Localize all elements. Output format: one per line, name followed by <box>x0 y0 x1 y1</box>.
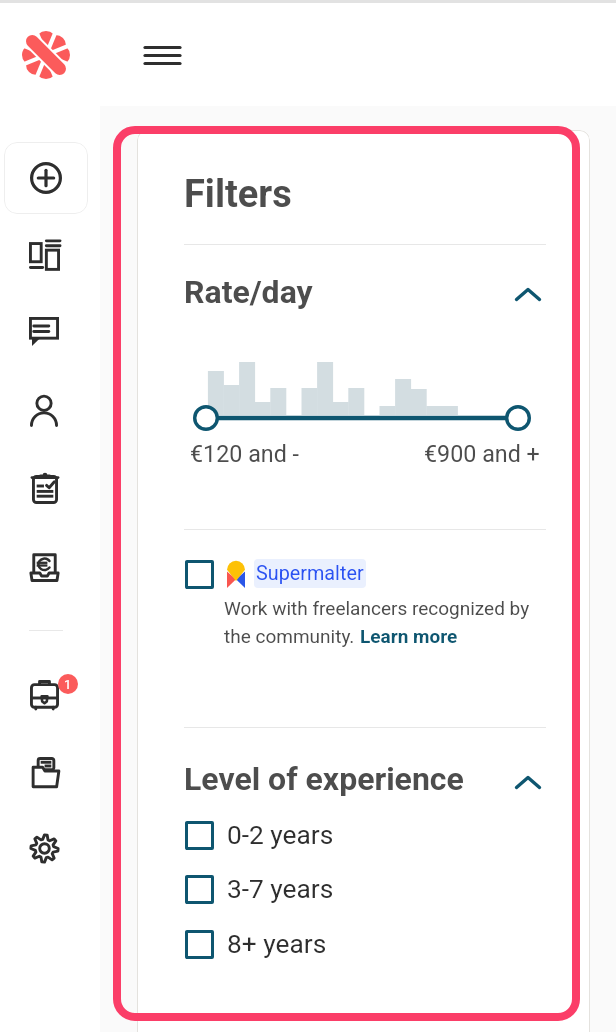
staticText: the community. <box>224 625 360 647</box>
staticText: 1 <box>64 677 72 692</box>
staticText: 3-7 years <box>227 874 334 905</box>
button[interactable]: 8+ years <box>185 928 405 960</box>
button[interactable]: Missions <box>21 463 69 515</box>
staticText: 8+ years <box>227 929 327 960</box>
staticText: 0-2 years <box>227 820 334 851</box>
button[interactable]: Level of experience <box>184 759 546 799</box>
button[interactable]: Create new <box>4 142 88 214</box>
staticText: Rate/day <box>184 273 313 311</box>
button[interactable]: Messages <box>18 306 70 357</box>
button[interactable]: Projects <box>19 669 70 720</box>
button[interactable]: Learn more <box>360 625 458 647</box>
button[interactable]: Settings <box>18 823 71 874</box>
button[interactable]: Invoices <box>19 541 70 593</box>
button[interactable]: 3-7 years <box>185 873 405 905</box>
button[interactable]: Profile <box>19 385 69 438</box>
staticText: €120 and - <box>190 440 300 467</box>
button[interactable]: Supermalter <box>254 559 366 588</box>
staticText: Supermalter <box>256 562 364 585</box>
button[interactable]: Folders <box>21 746 71 799</box>
staticText: Work with freelancers recognized by <box>224 597 530 619</box>
button[interactable]: Menu <box>139 36 185 74</box>
button[interactable]: Rate/day <box>184 272 546 312</box>
staticText: €900 and + <box>424 440 540 467</box>
staticText: Filters <box>184 172 292 217</box>
button[interactable]: 0-2 years <box>185 819 405 851</box>
button[interactable]: Dashboard <box>18 228 71 281</box>
staticText: Level of experience <box>184 760 464 798</box>
button[interactable]: Supermalter filter checkbox <box>185 560 214 589</box>
